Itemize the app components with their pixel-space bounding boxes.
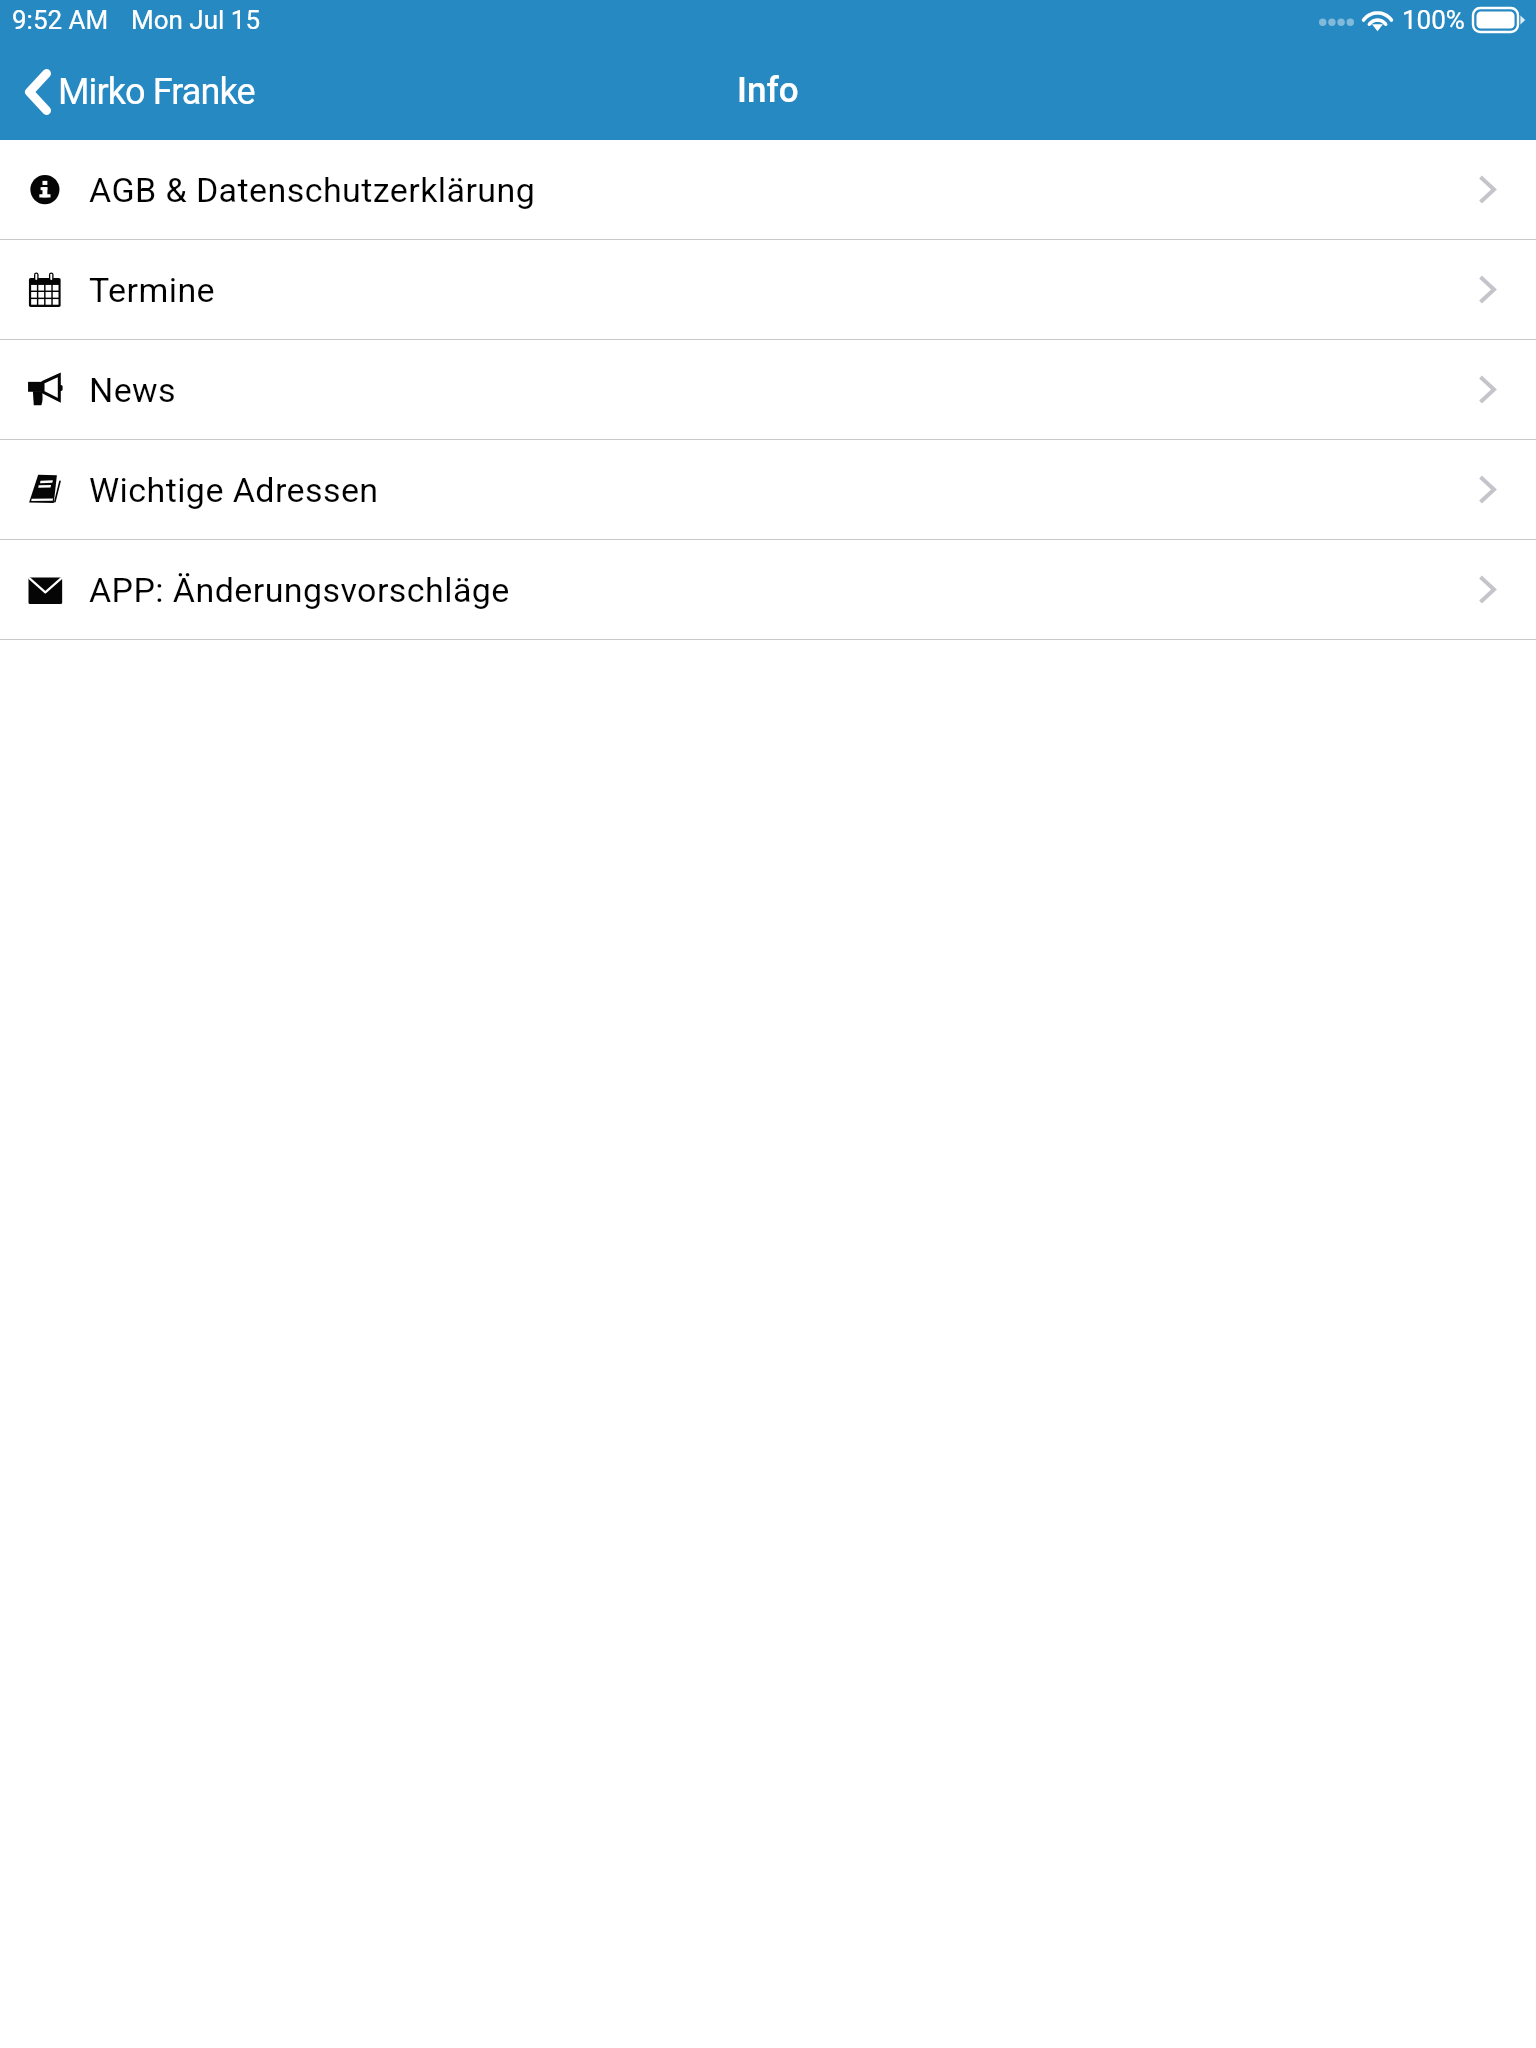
button[interactable]: AGB & Datenschutzerklärung bbox=[0, 140, 1536, 240]
staticText: Mon Jul 15 bbox=[131, 5, 261, 35]
button[interactable]: Back to Mirko Franke bbox=[0, 44, 273, 140]
button[interactable]: News bbox=[0, 340, 1536, 440]
staticText: Info bbox=[737, 70, 799, 111]
staticText: News bbox=[89, 370, 177, 410]
staticText: Termine bbox=[89, 270, 216, 310]
staticText: 100% bbox=[1402, 5, 1465, 35]
staticText: 9:52 AM bbox=[12, 5, 109, 35]
button[interactable]: APP: Änderungsvorschläge bbox=[0, 540, 1536, 640]
staticText: Mirko Franke bbox=[58, 71, 255, 113]
button[interactable]: Termine bbox=[0, 240, 1536, 340]
staticText: Wichtige Adressen bbox=[89, 470, 379, 510]
staticText: AGB & Datenschutzerklärung bbox=[89, 170, 536, 210]
staticText: APP: Änderungsvorschläge bbox=[89, 570, 510, 610]
button[interactable]: Wichtige Adressen bbox=[0, 440, 1536, 540]
